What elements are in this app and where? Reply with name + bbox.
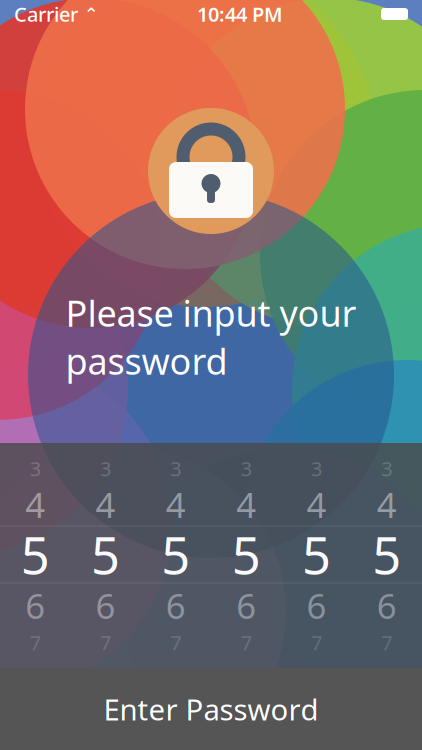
staticText: 6 <box>306 582 326 628</box>
button[interactable]: Enter Password <box>0 668 422 750</box>
staticText: 6 <box>25 582 45 628</box>
staticText: 5 <box>232 521 261 588</box>
staticText: 5 <box>91 521 120 588</box>
staticText: Please input your password <box>65 289 356 385</box>
staticText: 4 <box>95 481 115 527</box>
staticText: 10:44 PM <box>197 1 283 27</box>
staticText: 6 <box>236 582 256 628</box>
staticText: 4 <box>236 481 256 527</box>
staticText: 3 <box>30 455 41 482</box>
staticText: 5 <box>372 521 401 588</box>
staticText: 3 <box>381 455 392 482</box>
staticText: 7 <box>30 629 41 656</box>
staticText: 3 <box>311 455 322 482</box>
staticText: 5 <box>21 521 50 588</box>
staticText: 4 <box>377 481 397 527</box>
staticText: 4 <box>25 481 45 527</box>
staticText: 4 <box>166 481 186 527</box>
staticText: 3 <box>170 455 181 482</box>
staticText: 7 <box>241 629 252 656</box>
staticText: 5 <box>161 521 190 588</box>
staticText: 7 <box>311 629 322 656</box>
staticText: 6 <box>166 582 186 628</box>
staticText: 7 <box>100 629 111 656</box>
staticText: 7 <box>381 629 392 656</box>
staticText: 6 <box>95 582 115 628</box>
staticText: Carrier <box>14 1 78 27</box>
staticText: ⌃ <box>78 4 99 24</box>
staticText: 5 <box>302 521 331 588</box>
staticText: 3 <box>100 455 111 482</box>
staticText: Enter Password <box>103 689 318 728</box>
staticText: 3 <box>241 455 252 482</box>
staticText: 6 <box>377 582 397 628</box>
staticText: 4 <box>306 481 326 527</box>
staticText: 7 <box>170 629 181 656</box>
